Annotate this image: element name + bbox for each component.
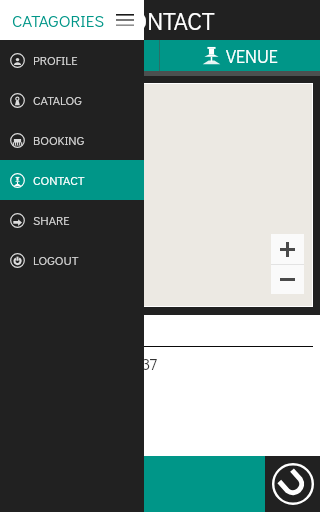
button[interactable]: Zoom in <box>271 234 304 264</box>
staticText: CATALOG <box>33 92 82 108</box>
button[interactable]: CONTACT <box>0 0 320 40</box>
button[interactable]: Call <box>265 456 320 512</box>
button[interactable]: CONTACT <box>0 160 144 200</box>
button[interactable]: VENUE <box>160 40 320 71</box>
staticText: CONTACT <box>33 172 85 188</box>
staticText: CATAGORIES <box>12 9 105 31</box>
staticText: SHARE <box>33 212 70 228</box>
staticText: CONTACT <box>116 5 215 36</box>
button[interactable] <box>0 456 265 512</box>
button[interactable]: Zoom out <box>271 265 304 294</box>
staticText: +91 9876543237 <box>41 352 158 374</box>
button[interactable]: CATAGORIES <box>0 0 144 40</box>
staticText: LOGOUT <box>33 252 79 268</box>
staticText: VENUE <box>226 44 278 68</box>
staticText: PROFILE <box>33 52 78 68</box>
button[interactable]: CATALOG <box>0 80 144 120</box>
staticText: MAP <box>73 44 109 68</box>
button[interactable]: SHARE <box>0 200 144 240</box>
staticText: BOOKING <box>33 132 85 148</box>
button[interactable]: LOGOUT <box>0 240 144 280</box>
button[interactable]: Menu <box>114 9 136 31</box>
button[interactable]: PROFILE <box>0 40 144 80</box>
button[interactable]: MAP <box>0 40 159 71</box>
button[interactable]: BOOKING <box>0 120 144 160</box>
